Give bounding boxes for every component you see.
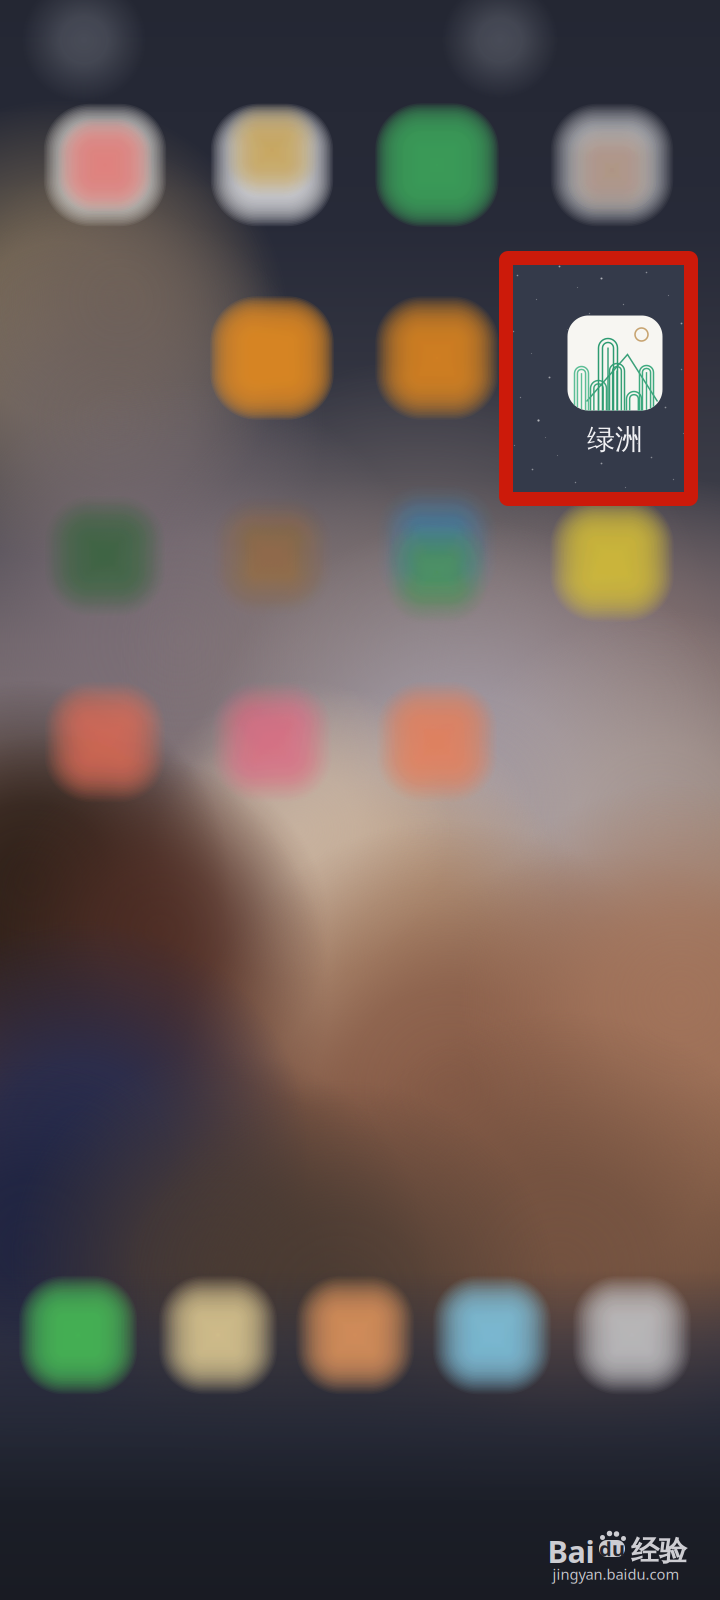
staticText: 经验 (631, 1534, 687, 1568)
staticText: Bai (547, 1531, 594, 1571)
staticText: du (599, 1535, 625, 1562)
staticText: 绿洲 (587, 422, 643, 457)
staticText: jingyan.baidu.com (552, 1564, 679, 1584)
